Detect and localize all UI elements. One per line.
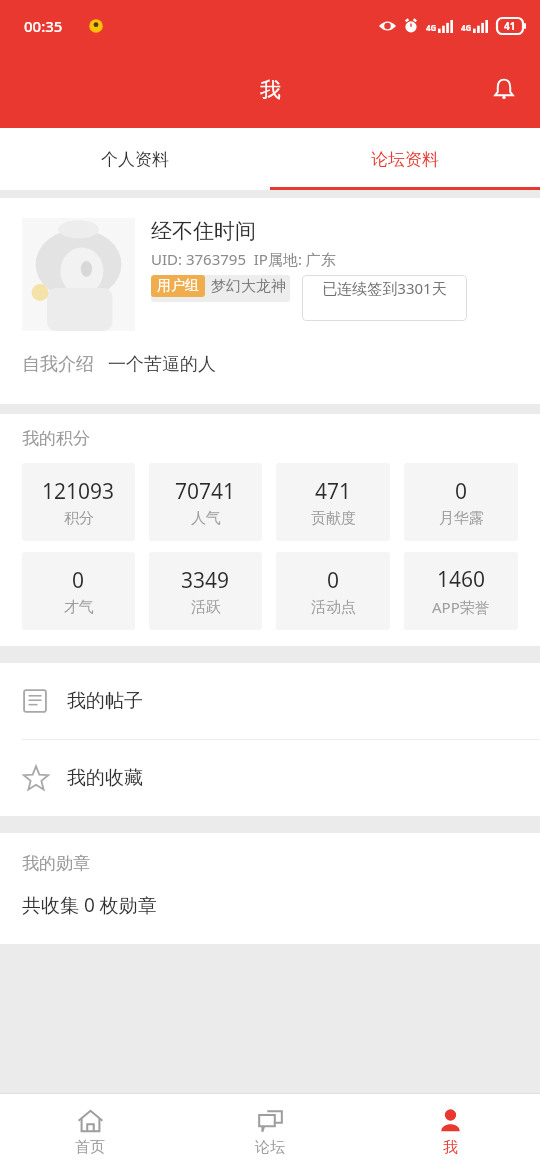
staticText: 才气 — [64, 598, 94, 617]
button[interactable]: 0 — [404, 463, 518, 541]
staticText: 00:35 — [24, 16, 63, 36]
staticText: 我的帖子 — [67, 689, 143, 713]
button[interactable]: 个人资料 — [0, 128, 270, 190]
staticText: 一个苦逼的人 — [108, 353, 216, 376]
staticText: 41 — [504, 19, 516, 33]
staticText: 论坛资料 — [371, 149, 439, 170]
staticText: 月华露 — [439, 509, 484, 528]
staticText: 共收集 0 枚勋章 — [22, 892, 157, 918]
staticText: APP荣誉 — [432, 597, 490, 617]
staticText: 梦幻大龙神 — [211, 277, 286, 296]
button[interactable]: 3349 — [149, 552, 262, 630]
staticText: 活跃 — [191, 598, 221, 617]
staticText: 4G — [426, 22, 437, 33]
button[interactable]: 0 — [276, 552, 390, 630]
staticText: 已连续签到3301天 — [322, 278, 447, 298]
button[interactable]: 1460 — [404, 552, 518, 630]
staticText: 0 — [455, 477, 468, 506]
staticText: 活动点 — [311, 598, 356, 617]
staticText: 1460 — [437, 565, 486, 594]
button[interactable]: Notifications — [480, 66, 528, 114]
staticText: 首页 — [75, 1138, 105, 1157]
staticText: 我 — [260, 77, 281, 103]
button[interactable]: 首页 — [0, 1094, 180, 1170]
staticText: 我 — [443, 1138, 458, 1157]
staticText: 经不住时间 — [151, 218, 256, 244]
button[interactable]: 471 — [276, 463, 390, 541]
staticText: 我的收藏 — [67, 766, 143, 790]
staticText: 人气 — [191, 509, 221, 528]
staticText: 积分 — [64, 509, 94, 528]
button[interactable]: 论坛资料 — [270, 128, 540, 190]
staticText: 471 — [315, 477, 352, 506]
staticText: 自我介绍 — [22, 353, 94, 376]
staticText: 我的积分 — [22, 428, 90, 449]
staticText: 用户组 — [157, 277, 199, 295]
button[interactable]: 我的帖子 — [0, 663, 540, 739]
staticText: 3349 — [181, 566, 230, 595]
button[interactable]: 已连续签到3301天 — [302, 275, 467, 321]
staticText: 4G — [461, 22, 472, 33]
staticText: 贡献度 — [311, 509, 356, 528]
staticText: 0 — [72, 566, 85, 595]
button[interactable]: 论坛 — [180, 1094, 360, 1170]
button[interactable]: 我的收藏 — [0, 740, 540, 816]
button[interactable]: 我 — [360, 1094, 540, 1170]
button[interactable]: 0 — [22, 552, 135, 630]
staticText: 论坛 — [255, 1138, 285, 1157]
staticText: UID: 3763795 IP属地: 广东 — [151, 249, 336, 269]
button[interactable]: 121093 — [22, 463, 135, 541]
staticText: 我的勋章 — [22, 853, 90, 874]
button[interactable]: 70741 — [149, 463, 262, 541]
button[interactable]: Avatar — [22, 218, 135, 331]
staticText: 个人资料 — [101, 149, 169, 170]
staticText: 121093 — [42, 477, 115, 506]
staticText: 0 — [327, 566, 340, 595]
staticText: 70741 — [175, 477, 236, 506]
